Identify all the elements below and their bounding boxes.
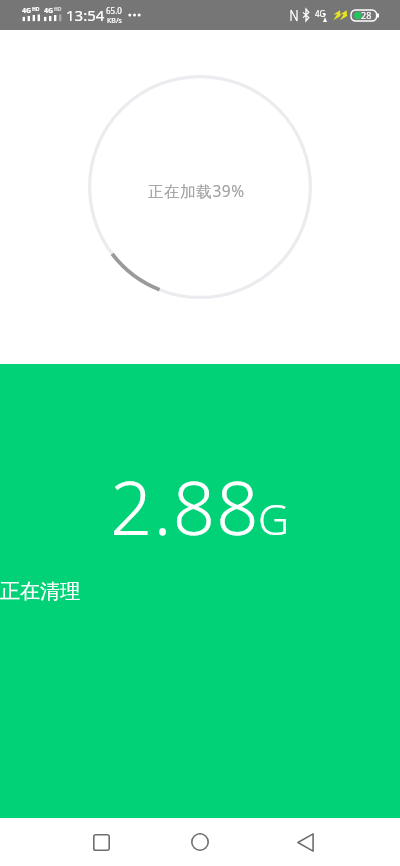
staticText: 28 (361, 9, 372, 21)
staticText: 4G (315, 8, 326, 19)
staticText: HD (32, 6, 40, 13)
button[interactable]: Recent apps (77, 818, 125, 866)
button[interactable]: Home (176, 818, 224, 866)
staticText: 4G (22, 6, 32, 16)
staticText: 13:54 (66, 5, 105, 25)
staticText: 正在清理 (0, 579, 80, 604)
staticText: 4G (44, 6, 54, 16)
staticText: 正在加载39% (148, 180, 245, 201)
staticText: 2.88 (110, 456, 260, 557)
staticText: G (258, 489, 290, 548)
staticText: KB/s (107, 16, 122, 26)
button[interactable]: Back (281, 818, 329, 866)
staticText: HD (54, 6, 62, 13)
staticText: 65.0 (106, 5, 122, 16)
